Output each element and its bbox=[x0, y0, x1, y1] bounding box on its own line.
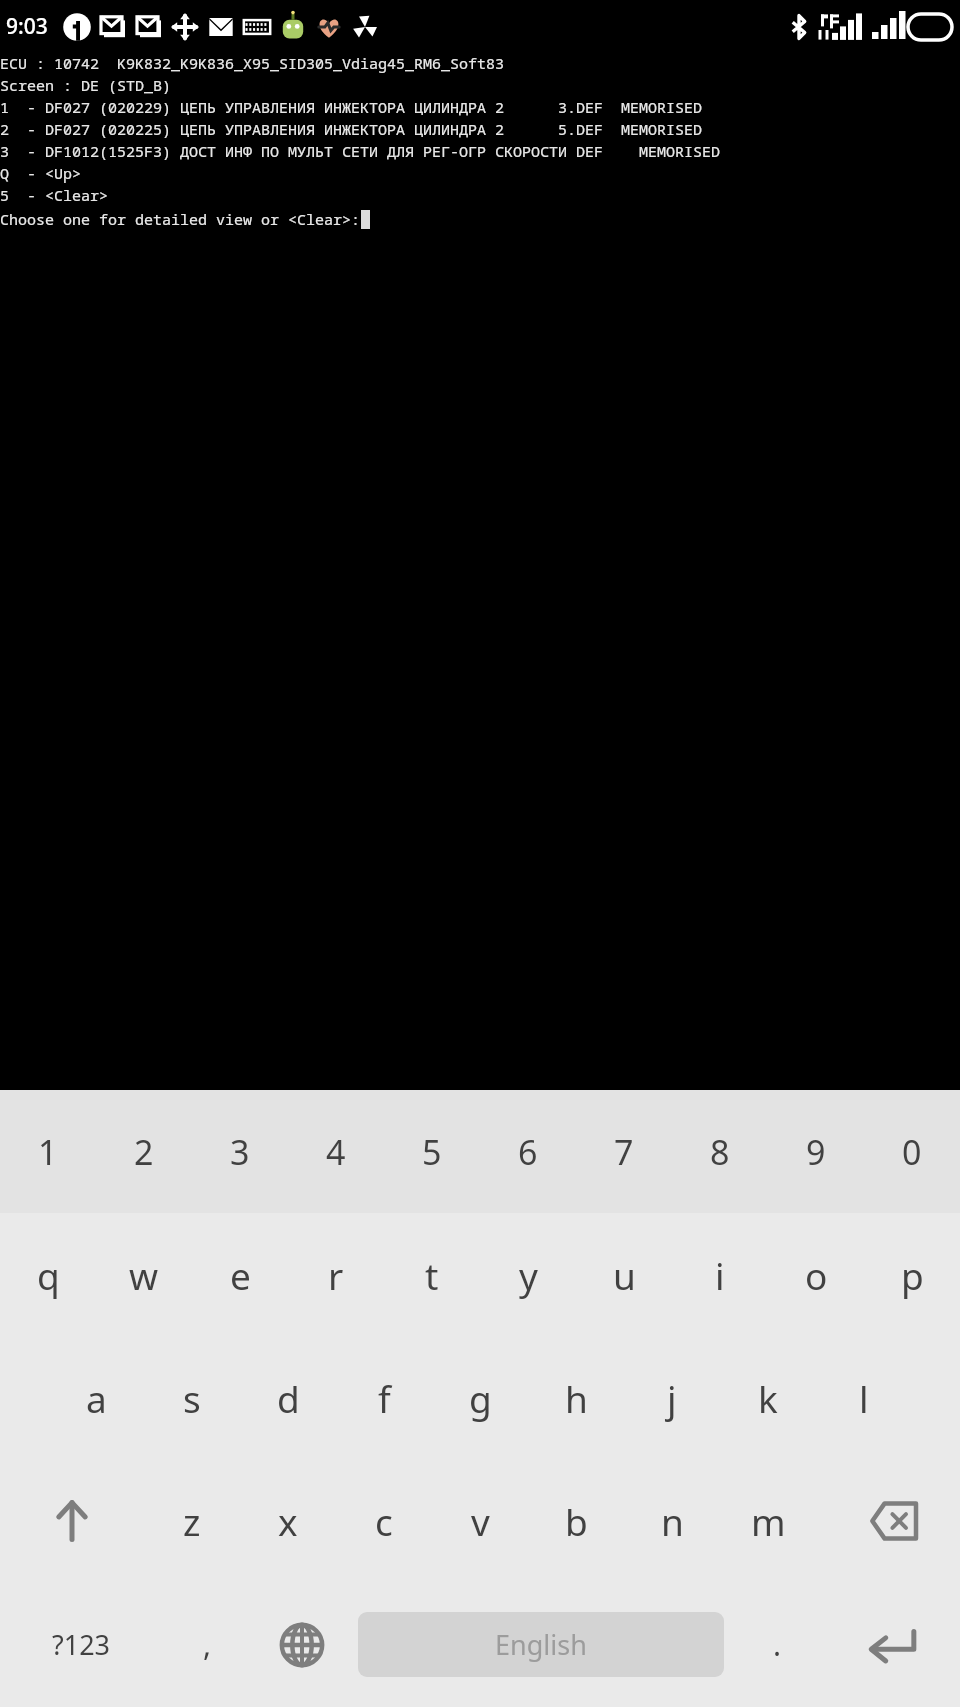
staticText: m bbox=[751, 1496, 786, 1546]
staticText: h bbox=[565, 1373, 588, 1423]
staticText: 5 bbox=[422, 1129, 442, 1175]
button[interactable]: g bbox=[432, 1336, 528, 1459]
staticText: Screen : DE (STD_B) bbox=[0, 75, 172, 97]
staticText: 4 bbox=[326, 1129, 346, 1175]
button[interactable]: 6 bbox=[480, 1090, 576, 1213]
button[interactable]: 2 bbox=[96, 1090, 192, 1213]
button[interactable]: 5 bbox=[384, 1090, 480, 1213]
staticText: e bbox=[230, 1250, 251, 1300]
staticText: f bbox=[378, 1373, 391, 1423]
button[interactable]: b bbox=[528, 1459, 624, 1582]
button[interactable]: w bbox=[96, 1213, 192, 1336]
staticText: 0 bbox=[902, 1129, 922, 1175]
button[interactable]: . bbox=[730, 1582, 824, 1707]
button[interactable]: o bbox=[768, 1213, 864, 1336]
staticText: 5 - <Clear> bbox=[0, 185, 109, 207]
staticText: p bbox=[901, 1250, 924, 1300]
button[interactable]: s bbox=[144, 1336, 240, 1459]
staticText: ECU : 10742 K9K832_K9K836_X95_SID305_Vdi… bbox=[0, 53, 505, 75]
button[interactable]: 1 bbox=[0, 1090, 96, 1213]
staticText: q bbox=[37, 1250, 60, 1300]
staticText: d bbox=[277, 1373, 300, 1423]
staticText: 7 bbox=[614, 1129, 634, 1175]
button[interactable]: 9 bbox=[768, 1090, 864, 1213]
staticText: x bbox=[278, 1496, 298, 1546]
staticText: i bbox=[715, 1250, 725, 1300]
staticText: s bbox=[183, 1373, 201, 1423]
staticText: 1 bbox=[38, 1129, 58, 1175]
button[interactable]: a bbox=[48, 1336, 144, 1459]
button[interactable]: u bbox=[576, 1213, 672, 1336]
button[interactable]: n bbox=[624, 1459, 720, 1582]
button[interactable]: v bbox=[432, 1459, 528, 1582]
staticText: u bbox=[613, 1250, 636, 1300]
button[interactable]: d bbox=[240, 1336, 336, 1459]
button[interactable]: 7 bbox=[576, 1090, 672, 1213]
button[interactable]: k bbox=[720, 1336, 816, 1459]
staticText: w bbox=[129, 1250, 159, 1300]
staticText: 2 bbox=[134, 1129, 154, 1175]
staticText: 8 bbox=[710, 1129, 730, 1175]
staticText: 1 - DF027 (020229) ЦЕПЬ УПРАВЛЕНИЯ ИНЖЕК… bbox=[0, 97, 703, 119]
staticText: r bbox=[328, 1250, 344, 1300]
button[interactable]: Change language bbox=[252, 1582, 352, 1707]
staticText: c bbox=[375, 1496, 393, 1546]
staticText: y bbox=[519, 1250, 538, 1300]
button[interactable]: 3 bbox=[192, 1090, 288, 1213]
button[interactable]: 0 bbox=[864, 1090, 960, 1213]
staticText: . bbox=[773, 1624, 782, 1665]
staticText: Q - <Up> bbox=[0, 163, 82, 185]
button[interactable]: ?123 bbox=[0, 1582, 163, 1707]
staticText: k bbox=[758, 1373, 778, 1423]
button[interactable]: q bbox=[0, 1213, 96, 1336]
button[interactable]: Shift bbox=[0, 1459, 144, 1582]
button[interactable]: p bbox=[864, 1213, 960, 1336]
staticText: 9:03 bbox=[6, 12, 48, 41]
button[interactable]: i bbox=[672, 1213, 768, 1336]
button[interactable]: 8 bbox=[672, 1090, 768, 1213]
staticText: a bbox=[86, 1373, 107, 1423]
button[interactable]: f bbox=[336, 1336, 432, 1459]
staticText: Choose one for detailed view or <Clear>: bbox=[0, 209, 361, 229]
button[interactable]: Enter bbox=[824, 1582, 960, 1707]
staticText: 9 bbox=[806, 1129, 826, 1175]
staticText: , bbox=[203, 1624, 212, 1665]
staticText: l bbox=[859, 1373, 869, 1423]
staticText: English bbox=[495, 1626, 587, 1663]
staticText: 3 - DF1012(1525F3) ДОСТ ИНФ ПО МУЛЬТ СЕТ… bbox=[0, 141, 721, 163]
staticText: n bbox=[661, 1496, 684, 1546]
staticText: 2 - DF027 (020225) ЦЕПЬ УПРАВЛЕНИЯ ИНЖЕК… bbox=[0, 119, 703, 141]
staticText: o bbox=[805, 1250, 828, 1300]
button[interactable]: m bbox=[720, 1459, 816, 1582]
button[interactable]: English bbox=[358, 1612, 724, 1677]
button[interactable]: 4 bbox=[288, 1090, 384, 1213]
button[interactable]: t bbox=[384, 1213, 480, 1336]
button[interactable]: , bbox=[163, 1582, 252, 1707]
staticText: t bbox=[425, 1250, 439, 1300]
button[interactable]: z bbox=[144, 1459, 240, 1582]
staticText: j bbox=[667, 1373, 677, 1423]
staticText: ?123 bbox=[52, 1626, 111, 1663]
button[interactable]: e bbox=[192, 1213, 288, 1336]
staticText: g bbox=[469, 1373, 492, 1423]
button[interactable]: y bbox=[480, 1213, 576, 1336]
staticText: b bbox=[565, 1496, 588, 1546]
staticText: v bbox=[471, 1496, 490, 1546]
button[interactable]: x bbox=[240, 1459, 336, 1582]
button[interactable]: c bbox=[336, 1459, 432, 1582]
button[interactable]: j bbox=[624, 1336, 720, 1459]
staticText: z bbox=[183, 1496, 201, 1546]
staticText: 6 bbox=[518, 1129, 538, 1175]
button[interactable]: Backspace bbox=[816, 1459, 960, 1582]
button[interactable]: h bbox=[528, 1336, 624, 1459]
staticText: 3 bbox=[230, 1129, 250, 1175]
button[interactable]: l bbox=[816, 1336, 912, 1459]
button[interactable]: r bbox=[288, 1213, 384, 1336]
